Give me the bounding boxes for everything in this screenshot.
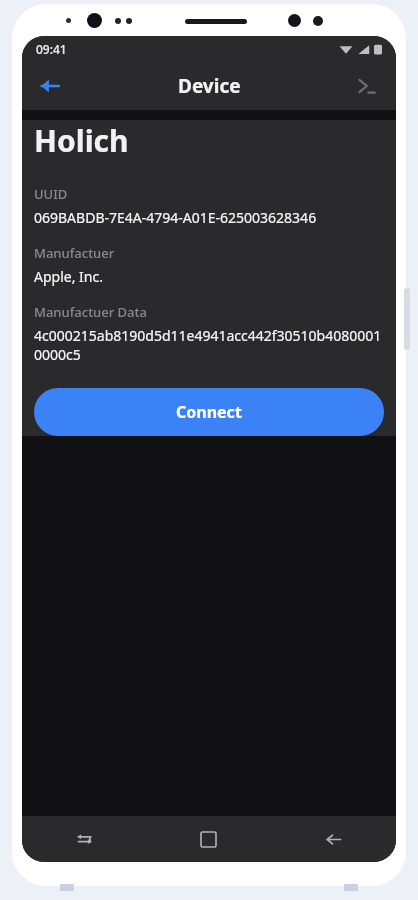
button[interactable]: Back xyxy=(28,64,72,108)
staticText: 069BABDB-7E4A-4794-A01E-625003628346 xyxy=(34,208,317,227)
button[interactable]: Connect xyxy=(34,388,384,436)
staticText: Device xyxy=(178,73,241,99)
staticText: 09:41 xyxy=(36,41,67,57)
button[interactable]: Recents xyxy=(22,816,146,862)
button[interactable]: Home xyxy=(146,816,271,862)
button[interactable]: Back xyxy=(271,816,396,862)
staticText: Connect xyxy=(176,401,242,423)
staticText: UUID xyxy=(34,185,68,203)
staticText: 4c000215ab8190d5d11e4941acc442f30510b408… xyxy=(34,326,384,364)
staticText: Apple, Inc. xyxy=(34,267,103,286)
staticText: Manufactuer xyxy=(34,244,115,262)
button[interactable]: Console xyxy=(344,64,388,108)
staticText: Manufactuer Data xyxy=(34,303,147,321)
staticText: Holich xyxy=(34,120,129,161)
